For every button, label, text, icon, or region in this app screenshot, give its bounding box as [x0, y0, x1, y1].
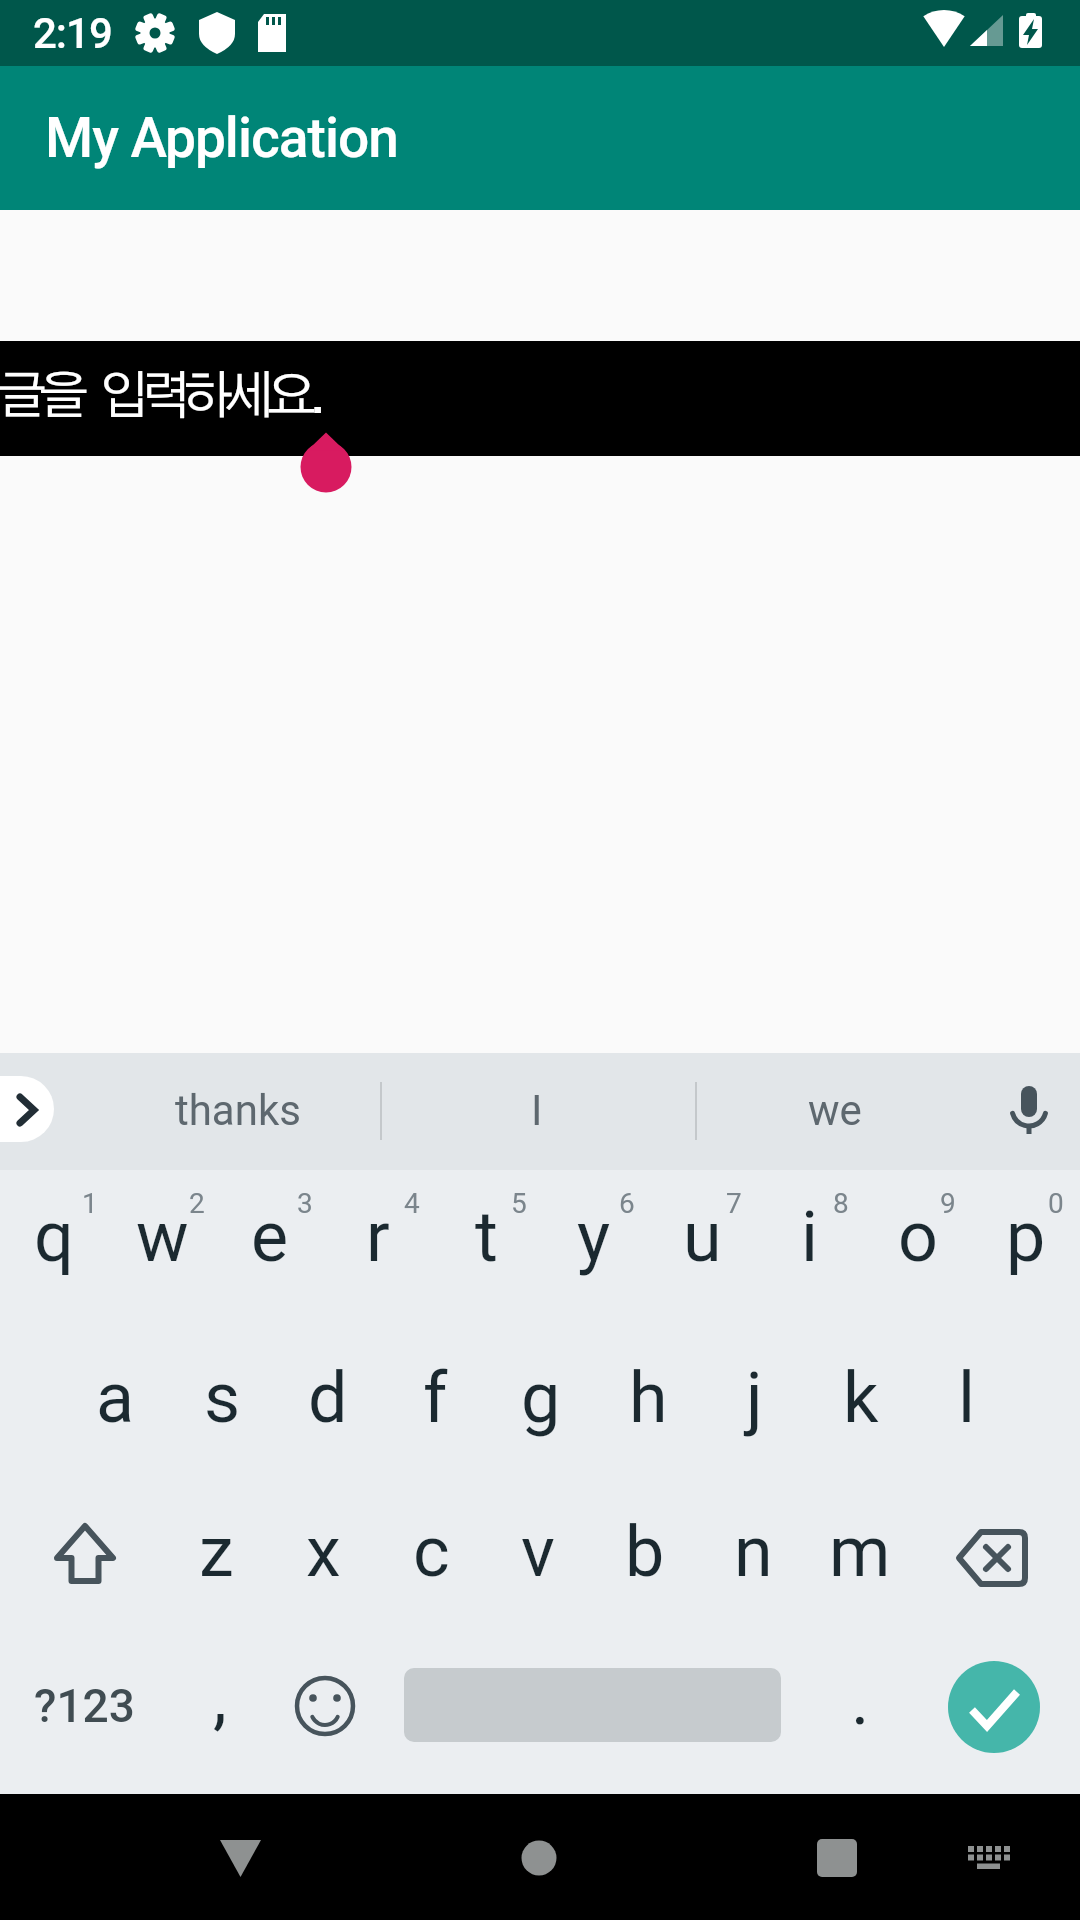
staticText: My Application	[45, 106, 398, 170]
button[interactable]: f	[382, 1328, 488, 1468]
staticText: ,	[213, 1657, 227, 1739]
button[interactable]: ?123	[0, 1646, 204, 1766]
staticText: 7	[726, 1187, 742, 1220]
staticText: j	[746, 1357, 763, 1439]
staticText: 글을 입력하세요.	[0, 372, 319, 424]
button[interactable]: j	[701, 1328, 807, 1468]
staticText: f	[423, 1357, 448, 1439]
button[interactable]	[1000, 1080, 1060, 1140]
button[interactable]: q	[0, 1177, 108, 1297]
staticText: 2:19	[33, 9, 112, 58]
button[interactable]: o	[864, 1177, 972, 1297]
staticText: 8	[833, 1187, 849, 1220]
button[interactable]: m	[807, 1482, 913, 1622]
button[interactable]: a	[62, 1328, 168, 1468]
button[interactable]: c	[378, 1482, 484, 1622]
staticText: m	[829, 1511, 891, 1593]
button[interactable]	[0, 341, 1080, 456]
staticText: e	[251, 1196, 289, 1278]
button[interactable]: s	[169, 1328, 275, 1468]
staticText: k	[843, 1357, 879, 1439]
staticText: thanks	[175, 1086, 301, 1135]
button[interactable]: h	[595, 1328, 701, 1468]
staticText: w	[136, 1196, 189, 1278]
staticText: v	[521, 1511, 555, 1593]
staticText: z	[199, 1511, 234, 1593]
button[interactable]: i	[756, 1177, 864, 1297]
button[interactable]	[0, 1076, 54, 1142]
button[interactable]	[948, 1661, 1040, 1753]
staticText: 0	[1048, 1187, 1064, 1220]
staticText: I	[531, 1086, 543, 1135]
button[interactable]	[295, 1676, 355, 1736]
staticText: 1	[82, 1187, 98, 1220]
button[interactable]: g	[488, 1328, 594, 1468]
button[interactable]: n	[700, 1482, 806, 1622]
staticText: .	[851, 1659, 870, 1741]
staticText: r	[366, 1196, 390, 1278]
staticText: o	[898, 1196, 938, 1278]
staticText: h	[629, 1357, 668, 1439]
button[interactable]: I	[417, 1050, 657, 1170]
staticText: 3	[297, 1187, 313, 1220]
button[interactable]: x	[270, 1482, 376, 1622]
staticText: p	[1006, 1196, 1046, 1278]
button[interactable]	[509, 1828, 569, 1888]
button[interactable]: z	[163, 1482, 269, 1622]
staticText: we	[808, 1086, 862, 1135]
button[interactable]: .	[740, 1640, 980, 1760]
staticText: x	[306, 1511, 341, 1593]
button[interactable]: w	[108, 1177, 216, 1297]
button[interactable]: k	[808, 1328, 914, 1468]
button[interactable]	[807, 1828, 867, 1888]
staticText: i	[801, 1196, 819, 1278]
staticText: ?123	[34, 1679, 135, 1733]
staticText: l	[958, 1357, 976, 1439]
staticText: b	[625, 1511, 665, 1593]
button[interactable]: e	[216, 1177, 324, 1297]
staticText: u	[683, 1196, 722, 1278]
button[interactable]	[30, 1500, 140, 1616]
button[interactable]: b	[592, 1482, 698, 1622]
button[interactable]: d	[275, 1328, 381, 1468]
staticText: g	[521, 1357, 561, 1439]
staticText: 2	[189, 1187, 205, 1220]
button[interactable]: p	[972, 1177, 1080, 1297]
staticText: a	[96, 1357, 135, 1439]
staticText: n	[734, 1511, 773, 1593]
staticText: q	[34, 1196, 74, 1278]
button[interactable]: ,	[100, 1638, 340, 1758]
staticText: y	[577, 1196, 611, 1278]
button[interactable]: u	[648, 1177, 756, 1297]
button[interactable]: y	[540, 1177, 648, 1297]
staticText: 5	[511, 1187, 527, 1220]
staticText: 4	[404, 1187, 420, 1220]
button[interactable]: t	[432, 1177, 540, 1297]
staticText: s	[204, 1357, 241, 1439]
staticText: d	[308, 1357, 348, 1439]
staticText: 9	[940, 1187, 956, 1220]
button[interactable]: thanks	[118, 1050, 358, 1170]
button[interactable]: we	[715, 1050, 955, 1170]
button[interactable]: v	[485, 1482, 591, 1622]
staticText: c	[413, 1511, 450, 1593]
button[interactable]	[938, 1500, 1048, 1616]
button[interactable]	[210, 1826, 270, 1886]
staticText: 6	[619, 1187, 635, 1220]
button[interactable]: r	[324, 1177, 432, 1297]
staticText: t	[475, 1196, 498, 1278]
button[interactable]: l	[914, 1328, 1020, 1468]
button[interactable]	[954, 1828, 1014, 1888]
